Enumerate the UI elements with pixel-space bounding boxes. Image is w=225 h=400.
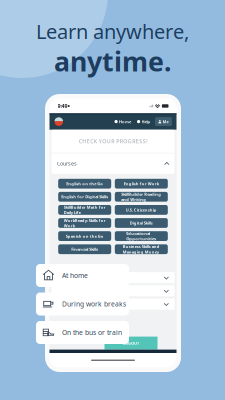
staticText: At home — [62, 271, 88, 280]
button[interactable]: On the bus or train — [36, 321, 129, 344]
button[interactable]: SkillBuilder Math for Daily Life — [58, 205, 111, 215]
button[interactable]: Educational Opportunities — [115, 231, 168, 241]
button[interactable]: English on the Go — [58, 179, 111, 189]
button[interactable]: English for Work — [115, 179, 168, 189]
staticText: anytime. — [54, 44, 171, 79]
staticText: English on the Go — [66, 181, 103, 186]
staticText: WorkReady: Skills for Work — [64, 218, 106, 228]
staticText: SkillBuilder Reading and Writing — [121, 191, 161, 202]
button[interactable] — [51, 285, 174, 297]
staticText: Courses — [57, 160, 77, 167]
staticText: ● — [67, 104, 69, 107]
button[interactable]: At home — [36, 264, 129, 287]
staticText: English for Digital Skills — [61, 194, 108, 199]
staticText: Spanish on the Go — [66, 233, 104, 239]
button[interactable]: Financial Skills — [58, 244, 111, 254]
staticText: SkillBuilder Math for Daily Life — [64, 205, 106, 215]
staticText: Home — [119, 119, 131, 124]
button[interactable]: Business Skills and Managing Money — [115, 244, 168, 254]
staticText: Financial Skills — [71, 246, 98, 252]
staticText: Digital Skills — [130, 220, 153, 226]
staticText: Learn anywhere, — [36, 18, 189, 45]
button[interactable]: English for Digital Skills — [58, 192, 111, 202]
button[interactable]: WorkReady: Skills for Work — [58, 218, 111, 228]
staticText: During work breaks — [62, 300, 126, 308]
staticText: Me — [163, 119, 169, 124]
staticText: CHECK YOUR PROGRESS! — [79, 138, 147, 145]
staticText: Business Skills and Managing Money — [123, 244, 160, 254]
staticText: Help — [141, 119, 150, 124]
button[interactable]: SkillBuilder Reading and Writing — [115, 192, 168, 202]
staticText: Educational Opportunities — [126, 231, 156, 241]
staticText: U.S. Citizenship — [126, 207, 157, 212]
button[interactable]: Courses — [51, 153, 174, 174]
staticText: On the bus or train — [62, 328, 122, 337]
button[interactable]: During work breaks — [36, 292, 129, 315]
staticText: English for Work — [124, 181, 159, 186]
button[interactable]: Digital Skills — [115, 218, 168, 228]
button[interactable]: U.S. Citizenship — [115, 205, 168, 215]
staticText: 9:49 — [57, 102, 67, 109]
button[interactable]: Me — [155, 117, 172, 126]
button[interactable]: Spanish on the Go — [58, 231, 111, 241]
staticText: LOGOUT — [123, 340, 139, 346]
button[interactable] — [51, 272, 174, 284]
button[interactable] — [51, 298, 174, 310]
button[interactable]: LOGOUT — [104, 337, 157, 350]
button[interactable]: Help — [135, 117, 152, 126]
button[interactable]: Home — [113, 117, 132, 126]
